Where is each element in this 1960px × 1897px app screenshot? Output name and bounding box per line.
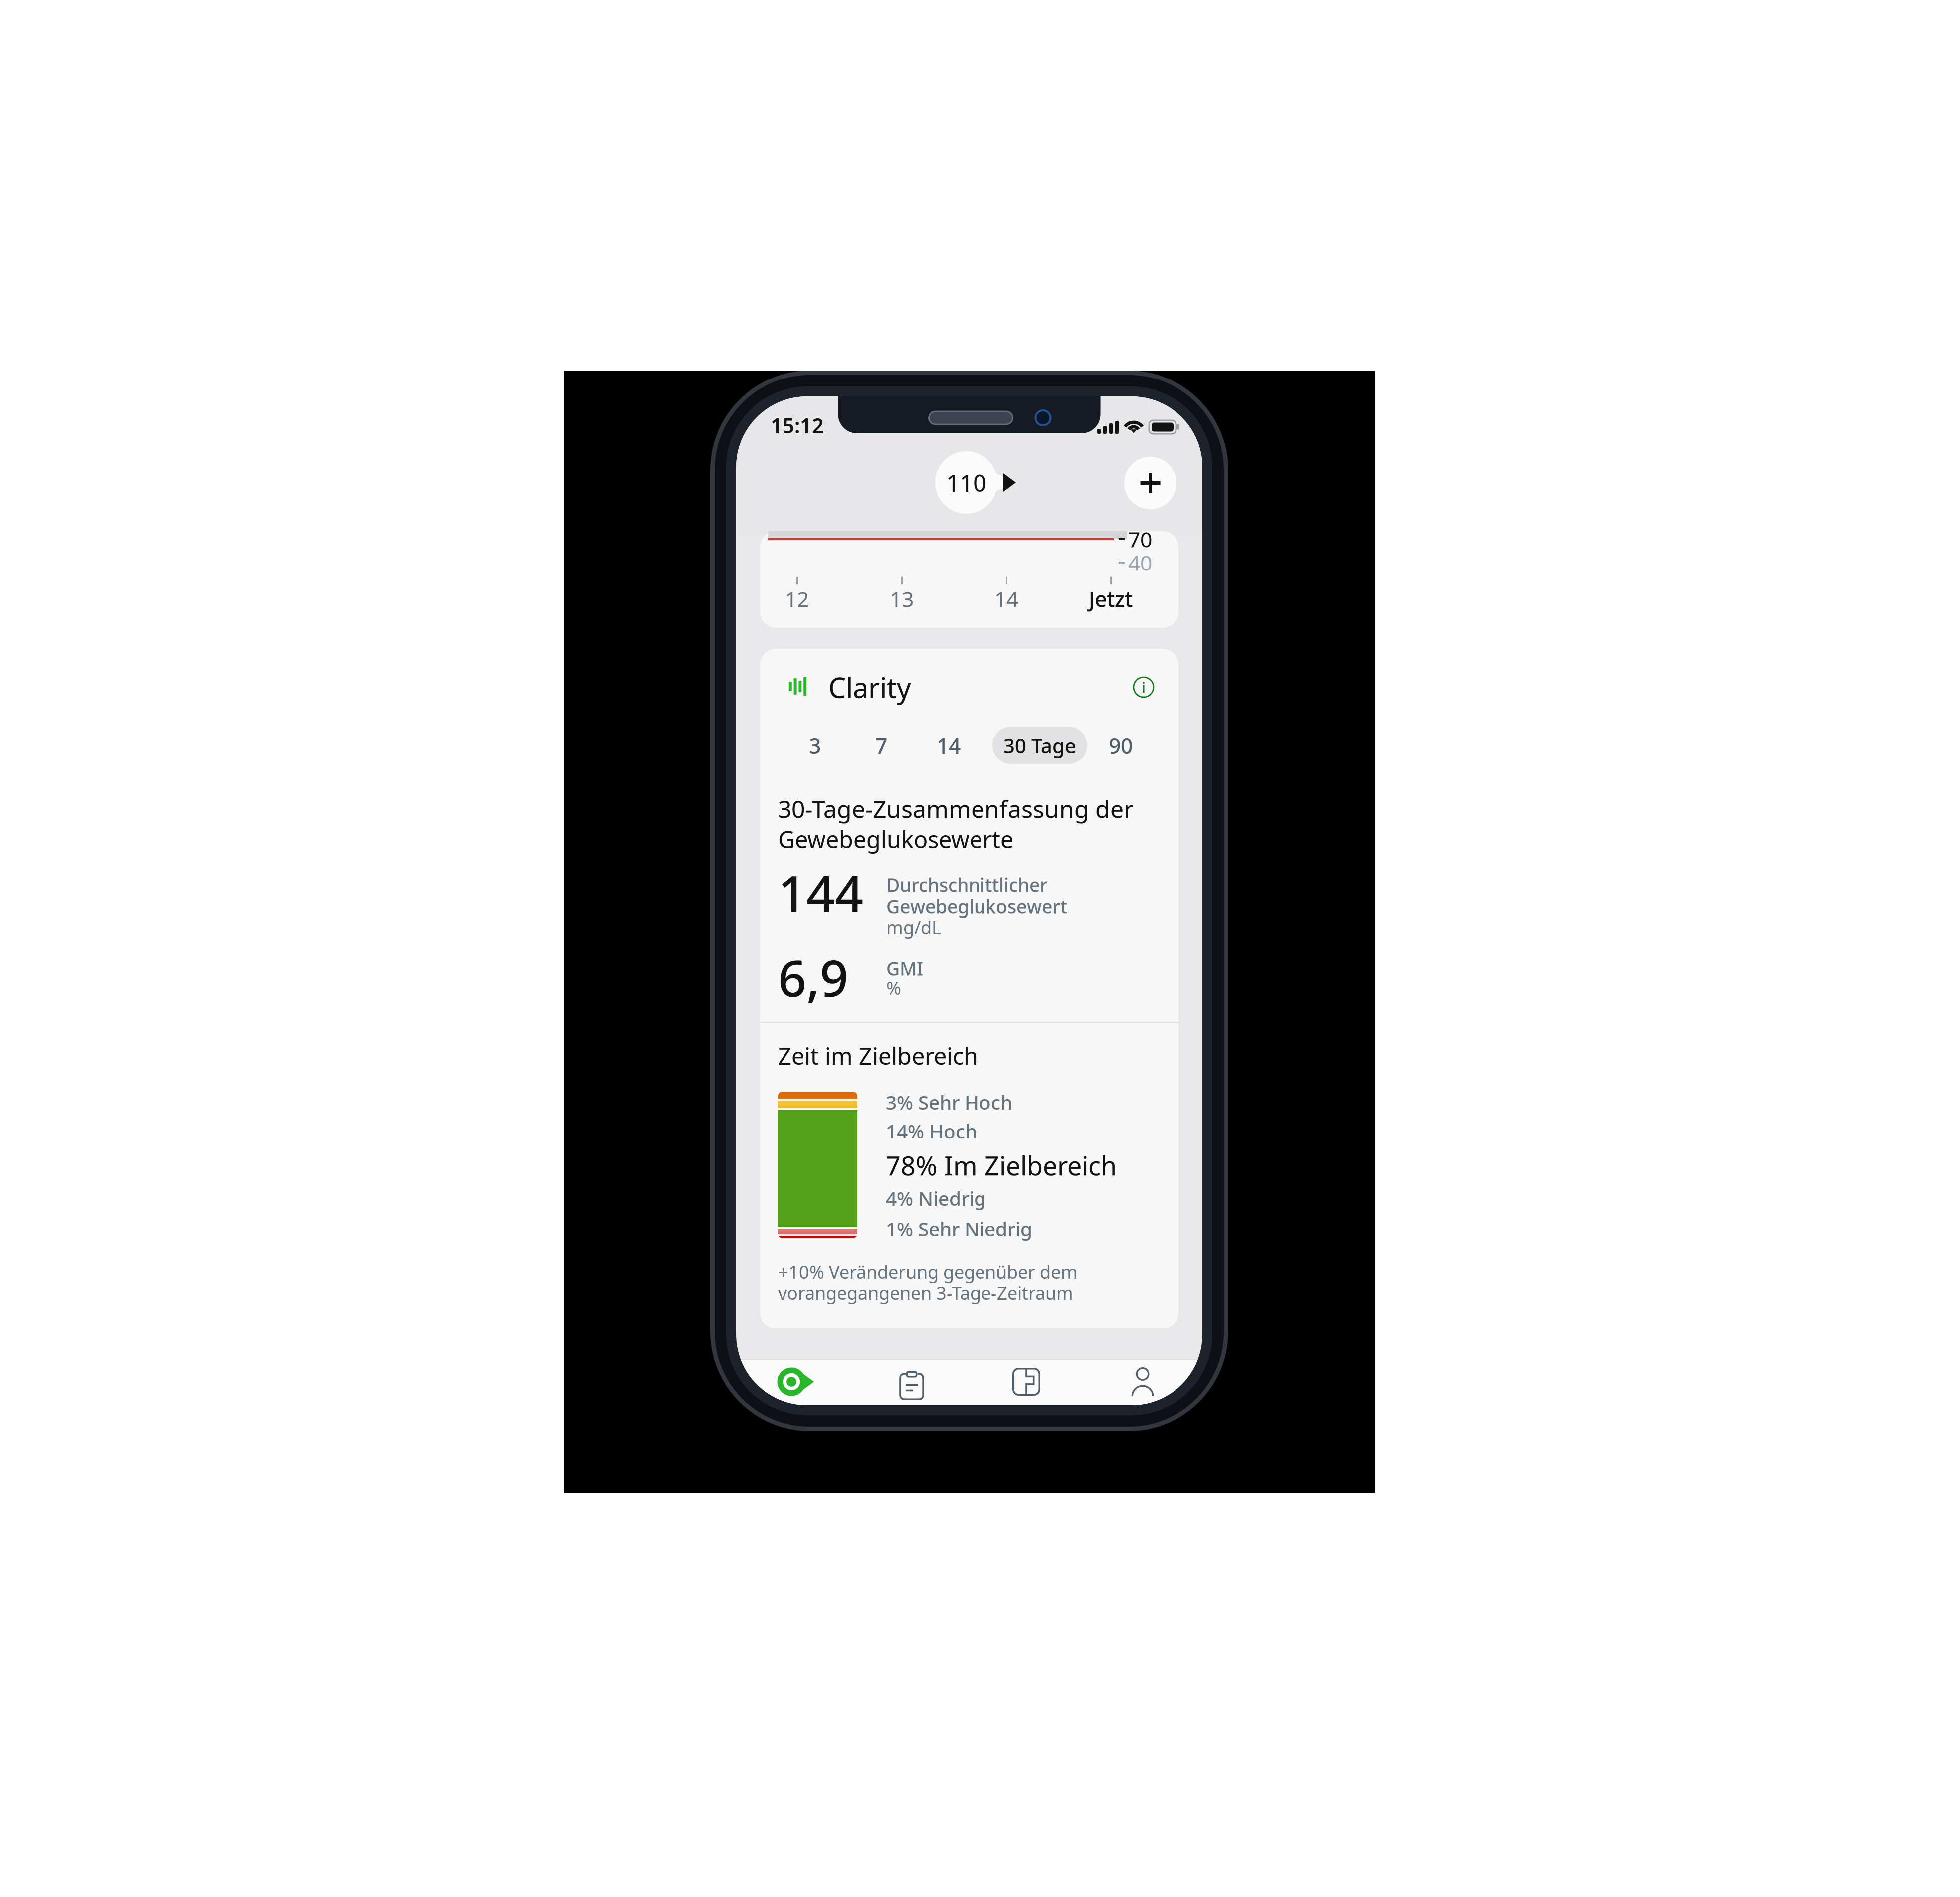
staticText: 15:12 bbox=[771, 412, 824, 439]
staticText: 3 bbox=[809, 731, 821, 759]
staticText: Zeit im Zielbereich bbox=[778, 1040, 978, 1071]
staticText: 144 bbox=[778, 860, 863, 926]
button[interactable]: Profil bbox=[1093, 1359, 1192, 1404]
button[interactable]: 90 bbox=[1093, 727, 1148, 764]
staticText: 3% Sehr Hoch bbox=[886, 1089, 1012, 1115]
staticText: GMI bbox=[886, 956, 923, 981]
button[interactable]: 14 bbox=[921, 727, 976, 764]
staticText: Jetzt bbox=[1089, 585, 1133, 613]
staticText: 110 bbox=[946, 467, 986, 498]
staticText: 6,9 bbox=[778, 944, 848, 1011]
button[interactable]: 7 bbox=[857, 727, 905, 764]
staticText: 14 bbox=[994, 585, 1018, 613]
button[interactable]: Sensor bbox=[977, 1359, 1076, 1404]
button[interactable]: Information bbox=[1134, 677, 1154, 697]
staticText: 14 bbox=[937, 731, 961, 759]
button[interactable]: Startseite bbox=[746, 1359, 845, 1404]
button[interactable]: 3 bbox=[791, 727, 839, 764]
staticText: 40 bbox=[1128, 548, 1152, 577]
staticText: mg/dL bbox=[886, 915, 941, 939]
staticText: 13 bbox=[890, 585, 914, 613]
staticText: Gewebeglukosewert bbox=[886, 894, 1067, 918]
staticText: 7 bbox=[875, 731, 887, 759]
staticText: Clarity bbox=[828, 669, 911, 706]
staticText: 1% Sehr Niedrig bbox=[886, 1216, 1032, 1242]
staticText: Durchschnittlicher bbox=[886, 872, 1048, 897]
staticText: 70 bbox=[1128, 525, 1152, 553]
staticText: vorangegangenen 3-Tage-Zeitraum bbox=[778, 1281, 1073, 1305]
staticText: 4% Niedrig bbox=[886, 1186, 986, 1211]
staticText: Gewebeglukosewerte bbox=[778, 824, 1013, 855]
staticText: 90 bbox=[1109, 731, 1133, 759]
button[interactable]: Verlauf bbox=[862, 1359, 962, 1404]
button[interactable]: 30 Tage bbox=[992, 727, 1087, 764]
staticText: 78% Im Zielbereich bbox=[886, 1148, 1117, 1183]
staticText: +10% Veränderung gegenüber dem bbox=[778, 1260, 1078, 1284]
staticText: 30-Tage-Zusammenfassung der bbox=[778, 793, 1134, 825]
staticText: 30 Tage bbox=[1003, 732, 1076, 759]
staticText: 12 bbox=[785, 585, 809, 613]
staticText: % bbox=[886, 976, 901, 1000]
staticText: i bbox=[1142, 677, 1146, 697]
staticText: 14% Hoch bbox=[886, 1118, 977, 1144]
button[interactable]: Ereignis hinzufügen bbox=[1124, 457, 1176, 509]
